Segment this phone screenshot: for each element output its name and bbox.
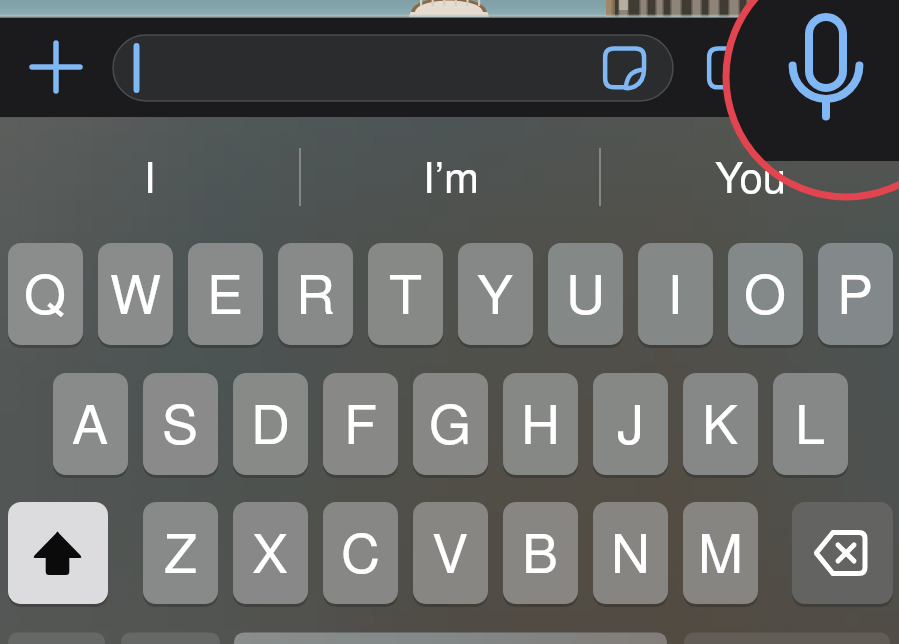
button[interactable]: E — [188, 243, 263, 345]
button[interactable]: Q — [8, 243, 83, 345]
button[interactable]: I — [638, 243, 713, 345]
button[interactable]: You — [600, 142, 899, 212]
button[interactable]: U — [548, 243, 623, 345]
button[interactable]: Add attachment — [12, 23, 100, 111]
button[interactable]: H — [503, 373, 578, 475]
button[interactable]: N — [593, 502, 668, 604]
button[interactable]: A — [53, 373, 128, 475]
button[interactable]: Stickers — [596, 40, 652, 96]
button[interactable]: Z — [143, 502, 218, 604]
button[interactable]: Backspace — [792, 502, 893, 604]
button[interactable]: I’m — [300, 142, 600, 212]
button[interactable]: L — [773, 373, 848, 475]
button[interactable]: O — [728, 243, 803, 345]
button[interactable]: Voice input — [788, 18, 868, 117]
button[interactable]: W — [98, 243, 173, 345]
button[interactable]: S — [143, 373, 218, 475]
button[interactable]: R — [278, 243, 353, 345]
button[interactable]: Emoji — [121, 632, 220, 644]
button[interactable]: M — [683, 502, 758, 604]
button[interactable]: Shift — [8, 502, 108, 604]
button[interactable]: Camera — [700, 40, 756, 96]
button[interactable]: Space — [234, 632, 667, 644]
button[interactable]: Numbers — [8, 632, 105, 644]
button[interactable]: J — [593, 373, 668, 475]
button[interactable]: Return — [684, 632, 890, 644]
button[interactable]: C — [323, 502, 398, 604]
button[interactable]: Y — [458, 243, 533, 345]
button[interactable]: T — [368, 243, 443, 345]
button[interactable]: F — [323, 373, 398, 475]
button[interactable]: D — [233, 373, 308, 475]
button[interactable]: Message text field — [113, 35, 673, 101]
button[interactable]: P — [818, 243, 893, 345]
button[interactable]: G — [413, 373, 488, 475]
button[interactable]: I — [0, 142, 300, 212]
button[interactable]: K — [683, 373, 758, 475]
button[interactable]: V — [413, 502, 488, 604]
button[interactable]: X — [233, 502, 308, 604]
button[interactable]: B — [503, 502, 578, 604]
